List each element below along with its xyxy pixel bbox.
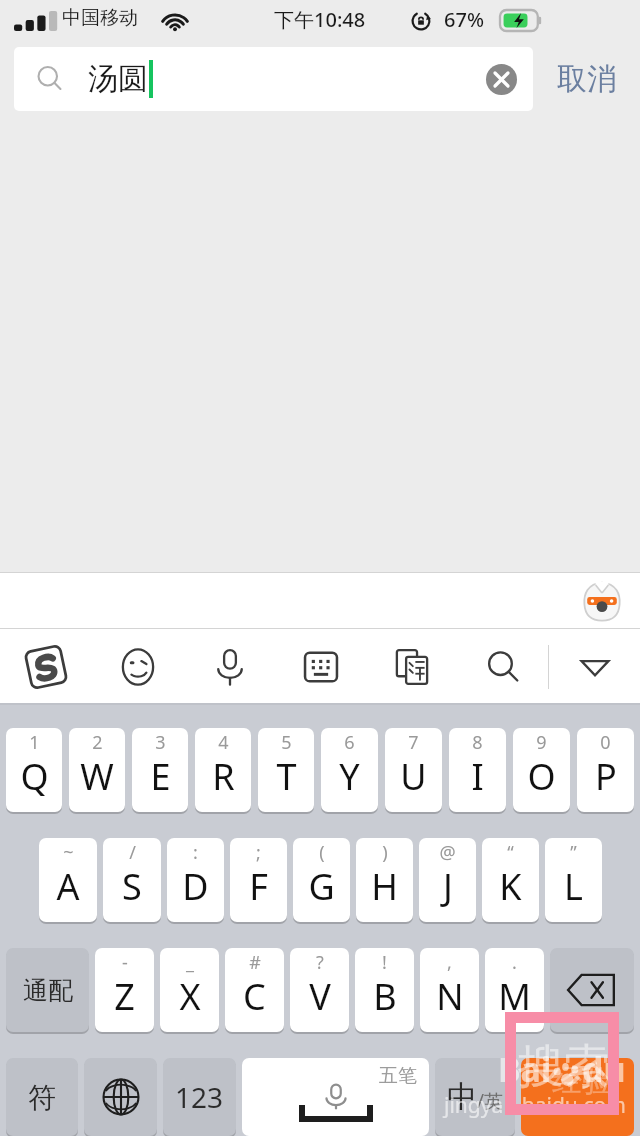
button[interactable]: 取消 <box>533 47 640 111</box>
staticText: P <box>595 752 617 801</box>
button[interactable]: 中 <box>435 1058 515 1136</box>
button[interactable]: 收起键盘 <box>549 629 640 705</box>
staticText: / <box>129 840 136 865</box>
button[interactable] <box>84 1058 157 1136</box>
staticText: 经验 <box>552 1062 612 1100</box>
staticText: V <box>309 972 331 1021</box>
staticText: H <box>371 862 398 911</box>
staticText: Q <box>20 752 49 801</box>
staticText: 中 <box>447 1078 477 1116</box>
button[interactable]: @ <box>419 838 476 922</box>
staticText: Z <box>114 972 135 1021</box>
staticText: K <box>499 862 522 911</box>
staticText: T <box>276 752 297 801</box>
staticText: 通配 <box>23 975 73 1006</box>
staticText: 5 <box>281 730 292 755</box>
staticText: 取消 <box>557 60 617 98</box>
button[interactable]: : <box>167 838 224 922</box>
staticText: : <box>193 840 198 865</box>
staticText: 4 <box>218 730 229 755</box>
staticText: 67% <box>444 6 484 33</box>
staticText: R <box>212 752 235 801</box>
button[interactable]: _ <box>160 948 219 1032</box>
staticText: 中国移动 <box>62 6 138 30</box>
staticText: ; <box>256 840 261 865</box>
button[interactable]: 9 <box>513 728 570 812</box>
button[interactable]: 翻译 <box>366 629 457 705</box>
button[interactable]: 4 <box>195 728 251 812</box>
button[interactable]: 搜狗助手 <box>580 579 624 623</box>
staticText: “ <box>507 840 514 865</box>
button[interactable]: 3 <box>132 728 188 812</box>
button[interactable]: - <box>95 948 154 1032</box>
button[interactable]: ( <box>293 838 350 922</box>
button[interactable]: ? <box>290 948 349 1032</box>
button[interactable]: ” <box>545 838 602 922</box>
button[interactable]: 通配 <box>6 948 89 1032</box>
staticText: D <box>182 862 209 911</box>
staticText: 下午10:48 <box>274 6 366 33</box>
button[interactable]: 5 <box>258 728 314 812</box>
staticText: @ <box>439 840 456 865</box>
other: 删除 <box>550 948 634 1032</box>
staticText: L <box>564 862 583 911</box>
button[interactable]: 2 <box>69 728 125 812</box>
button[interactable]: # <box>225 948 284 1032</box>
staticText: J <box>443 862 453 911</box>
staticText: . <box>512 950 517 975</box>
button[interactable]: 1 <box>6 728 62 812</box>
button[interactable]: 搜索 <box>521 1058 634 1136</box>
staticText: O <box>527 752 556 801</box>
button[interactable]: 123 <box>163 1058 236 1136</box>
staticText: 7 <box>408 730 419 755</box>
staticText: ” <box>570 840 577 865</box>
button[interactable]: “ <box>482 838 539 922</box>
staticText: - <box>122 950 128 975</box>
staticText: 1 <box>29 730 40 755</box>
staticText: 搜索 <box>518 1038 610 1096</box>
button[interactable]: 搜狗输入法 <box>0 629 92 705</box>
button[interactable]: 五笔 <box>242 1058 429 1136</box>
button[interactable]: 0 <box>577 728 634 812</box>
staticText: F <box>249 862 268 911</box>
button[interactable]: 表情 <box>92 629 184 705</box>
staticText: du <box>582 1046 626 1092</box>
button[interactable]: 6 <box>321 728 378 812</box>
staticText: N <box>436 972 464 1021</box>
button[interactable]: ~ <box>39 838 97 922</box>
staticText: 2 <box>92 730 103 755</box>
button[interactable]: ! <box>355 948 414 1032</box>
staticText: X <box>179 972 201 1021</box>
staticText: 符 <box>28 1080 56 1115</box>
staticText: _ <box>186 950 194 975</box>
staticText: 6 <box>344 730 355 755</box>
staticText: M <box>498 972 531 1021</box>
button[interactable]: 搜索 <box>457 629 548 705</box>
staticText: 0 <box>600 730 611 755</box>
staticText: A <box>56 862 80 911</box>
staticText: B <box>373 972 397 1021</box>
button[interactable]: 7 <box>385 728 442 812</box>
button[interactable]: 符 <box>6 1058 78 1136</box>
button[interactable]: 8 <box>449 728 506 812</box>
button[interactable]: ; <box>230 838 287 922</box>
button[interactable] <box>550 948 634 1032</box>
staticText: 汤圆 <box>88 60 148 98</box>
button[interactable]: . <box>485 948 544 1032</box>
button[interactable]: 汤圆 <box>14 47 533 111</box>
staticText: ? <box>316 950 324 975</box>
staticText: /英 <box>477 1088 504 1114</box>
button[interactable]: 语音输入 <box>184 629 275 705</box>
staticText: 8 <box>472 730 483 755</box>
staticText: ! <box>382 950 387 975</box>
staticText: U <box>400 752 427 801</box>
button[interactable]: , <box>420 948 479 1032</box>
button[interactable]: 清除 <box>481 59 521 99</box>
button[interactable]: ) <box>356 838 413 922</box>
staticText: Bai <box>498 1046 552 1092</box>
staticText: jingyan.baidu.com <box>444 1091 626 1120</box>
button[interactable]: / <box>103 838 161 922</box>
staticText: , <box>447 950 452 975</box>
button[interactable]: 键盘设置 <box>275 629 366 705</box>
staticText: 五笔 <box>379 1064 417 1088</box>
